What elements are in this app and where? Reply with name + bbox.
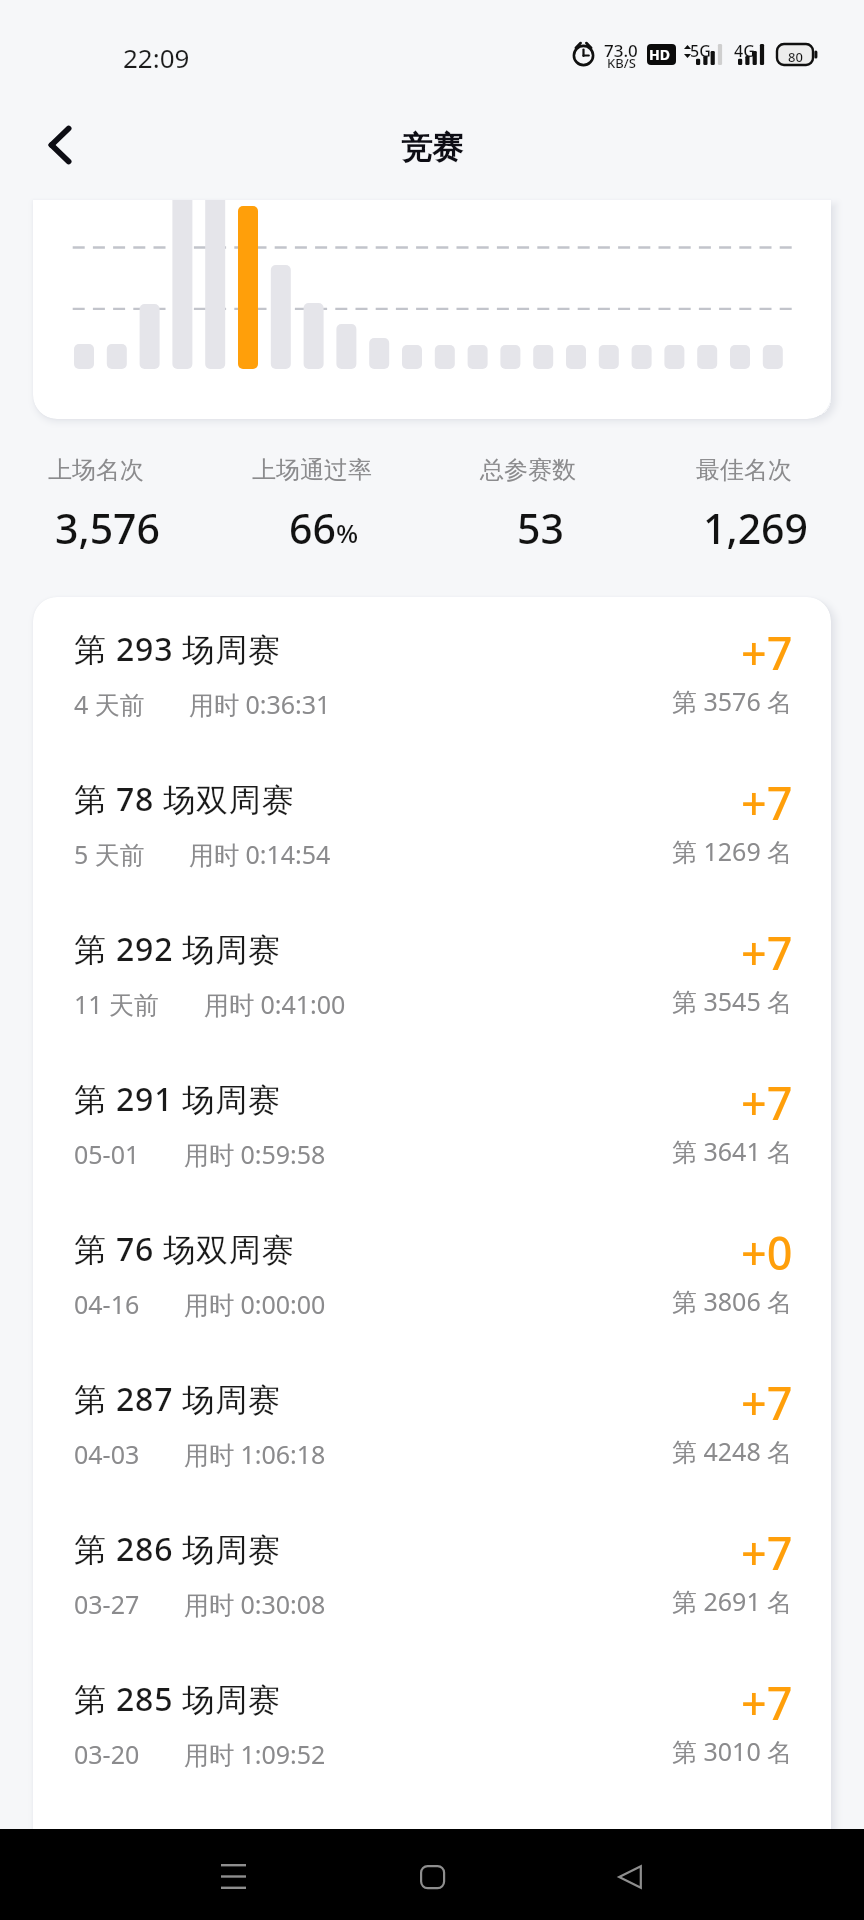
button[interactable]: 第 292 场周赛 <box>33 897 831 1047</box>
staticText: 上场通过率 <box>252 455 372 485</box>
staticText: 03-27 <box>74 1587 140 1621</box>
button[interactable]: Back <box>590 1837 669 1916</box>
staticText: 第 3576 名 <box>672 684 793 718</box>
button[interactable]: 第 285 场周赛 <box>33 1647 831 1797</box>
button[interactable]: 第 78 场双周赛 <box>33 747 831 897</box>
staticText: 用时 0:59:58 <box>184 1137 326 1171</box>
staticText: 用时 0:41:00 <box>204 987 346 1021</box>
button[interactable]: 第 287 场周赛 <box>33 1347 831 1497</box>
staticText: 04-16 <box>74 1287 140 1321</box>
staticText: 用时 1:06:18 <box>184 1437 326 1471</box>
staticText: HD <box>649 45 670 64</box>
staticText: 03-20 <box>74 1737 140 1771</box>
staticText: 第 291 场周赛 <box>74 1077 281 1121</box>
staticText: 第 287 场周赛 <box>74 1377 281 1421</box>
button[interactable]: Recent apps <box>194 1837 273 1916</box>
button[interactable]: 第 291 场周赛 <box>33 1047 831 1197</box>
staticText: 4 天前 <box>74 687 145 721</box>
staticText: 最佳名次 <box>696 455 792 485</box>
staticText: +7 <box>741 1522 793 1583</box>
staticText: 73.0 <box>604 39 638 62</box>
staticText: 用时 0:30:08 <box>184 1587 326 1621</box>
button[interactable]: Home <box>393 1837 472 1916</box>
staticText: +7 <box>741 622 793 683</box>
staticText: KB/S <box>607 54 636 72</box>
staticText: 1,269 <box>703 500 809 556</box>
staticText: 总参赛数 <box>480 455 576 485</box>
staticText: 第 76 场双周赛 <box>74 1227 295 1271</box>
staticText: 第 286 场周赛 <box>74 1527 281 1571</box>
staticText: 4G <box>734 40 755 62</box>
staticText: 第 3010 名 <box>672 1734 793 1768</box>
staticText: 第 3641 名 <box>672 1134 793 1168</box>
button[interactable]: 第 293 场周赛 <box>33 597 831 747</box>
staticText: 22:09 <box>123 40 190 75</box>
staticText: 53 <box>517 500 564 556</box>
staticText: 第 4248 名 <box>672 1434 793 1468</box>
staticText: 用时 0:14:54 <box>189 837 331 871</box>
button[interactable]: 第 76 场双周赛 <box>33 1197 831 1347</box>
staticText: 66 <box>289 500 336 556</box>
staticText: 第 2691 名 <box>672 1584 793 1618</box>
staticText: 5G <box>690 40 711 62</box>
staticText: 用时 0:00:00 <box>184 1287 326 1321</box>
staticText: 11 天前 <box>74 987 160 1021</box>
staticText: 05-01 <box>74 1137 140 1171</box>
button[interactable]: Back <box>20 113 84 177</box>
button[interactable]: 第 286 场周赛 <box>33 1497 831 1647</box>
staticText: 用时 0:36:31 <box>189 687 331 721</box>
staticText: 80 <box>788 48 803 66</box>
staticText: 竞赛 <box>401 128 463 167</box>
staticText: 04-03 <box>74 1437 140 1471</box>
staticText: 第 292 场周赛 <box>74 927 281 971</box>
staticText: 3,576 <box>55 500 161 556</box>
staticText: +7 <box>741 1672 793 1733</box>
staticText: 第 3545 名 <box>672 984 793 1018</box>
staticText: % <box>336 515 359 550</box>
staticText: +7 <box>741 1072 793 1133</box>
staticText: 第 3806 名 <box>672 1284 793 1318</box>
staticText: +7 <box>741 922 793 983</box>
staticText: +7 <box>741 1372 793 1433</box>
staticText: 第 1269 名 <box>672 834 793 868</box>
staticText: 上场名次 <box>48 455 144 485</box>
staticText: +0 <box>741 1222 793 1283</box>
staticText: 5 天前 <box>74 837 145 871</box>
staticText: +7 <box>741 772 793 833</box>
staticText: 第 78 场双周赛 <box>74 777 295 821</box>
staticText: 第 285 场周赛 <box>74 1677 281 1721</box>
staticText: 第 293 场周赛 <box>74 627 281 671</box>
staticText: 用时 1:09:52 <box>184 1737 326 1771</box>
